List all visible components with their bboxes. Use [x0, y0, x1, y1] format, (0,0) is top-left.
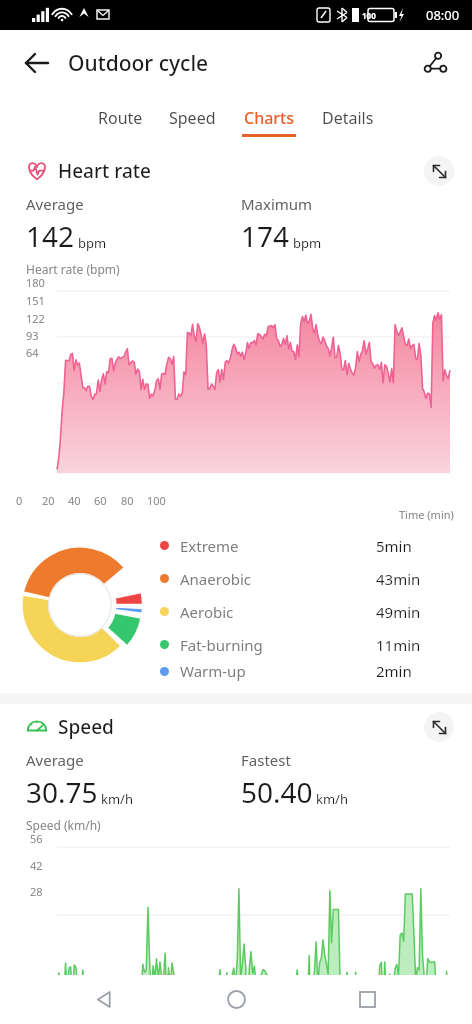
- staticText: 5min: [376, 536, 450, 556]
- staticText: Speed: [58, 714, 114, 740]
- staticText: 20: [42, 493, 55, 508]
- staticText: 40: [68, 493, 81, 508]
- button[interactable]: Fat-burning: [160, 628, 450, 661]
- staticText: Time (min): [399, 507, 454, 522]
- staticText: 08:00: [426, 6, 460, 24]
- staticText: km/h: [101, 790, 133, 808]
- staticText: Anaerobic: [180, 569, 376, 589]
- staticText: 42: [30, 858, 43, 873]
- staticText: bpm: [293, 234, 322, 252]
- staticText: Route: [98, 107, 143, 129]
- staticText: 151: [26, 293, 45, 308]
- staticText: 30.75: [26, 773, 98, 811]
- staticText: 28: [30, 884, 43, 899]
- staticText: 174: [241, 217, 290, 255]
- button[interactable]: Back: [79, 975, 131, 1024]
- staticText: 142: [26, 217, 75, 255]
- staticText: 180: [26, 275, 45, 290]
- button[interactable]: Expand Speed chart: [424, 712, 454, 742]
- staticText: 49min: [376, 602, 450, 622]
- button[interactable]: Aerobic: [160, 595, 450, 628]
- staticText: 80: [121, 493, 134, 508]
- button[interactable]: Details: [314, 103, 382, 141]
- staticText: Warm-up: [180, 661, 376, 681]
- button[interactable]: Warm-up: [160, 661, 450, 681]
- staticText: Outdoor cycle: [68, 49, 209, 78]
- staticText: 100: [362, 10, 376, 21]
- button[interactable]: Anaerobic: [160, 562, 450, 595]
- staticText: Aerobic: [180, 602, 376, 622]
- staticText: Speed: [169, 107, 216, 129]
- staticText: Charts: [244, 107, 295, 129]
- button[interactable]: Extreme: [160, 529, 450, 562]
- staticText: bpm: [78, 234, 107, 252]
- staticText: 11min: [376, 635, 450, 655]
- button[interactable]: Route: [90, 103, 151, 141]
- staticText: 2min: [376, 661, 450, 681]
- staticText: Heart rate: [58, 158, 151, 184]
- staticText: Extreme: [180, 536, 376, 556]
- staticText: 43min: [376, 569, 450, 589]
- staticText: Average: [26, 194, 84, 214]
- staticText: 64: [26, 345, 39, 360]
- button[interactable]: Charts: [234, 103, 304, 141]
- staticText: Heart rate (bpm): [26, 261, 120, 277]
- staticText: 60: [94, 493, 107, 508]
- staticText: 93: [26, 328, 39, 343]
- staticText: 100: [147, 493, 166, 508]
- button[interactable]: Home: [210, 975, 262, 1024]
- staticText: km/h: [316, 790, 348, 808]
- staticText: Maximum: [241, 194, 313, 214]
- staticText: 50.40: [241, 773, 313, 811]
- button[interactable]: Speed: [161, 103, 224, 141]
- staticText: Speed (km/h): [26, 817, 101, 833]
- staticText: 122: [26, 311, 45, 326]
- button[interactable]: Back: [14, 40, 60, 86]
- button[interactable]: Recents: [341, 975, 393, 1024]
- staticText: Fastest: [241, 750, 291, 770]
- button[interactable]: Share: [412, 40, 458, 86]
- staticText: 0: [16, 493, 23, 508]
- staticText: 56: [30, 831, 43, 846]
- button[interactable]: Expand Heart rate chart: [424, 156, 454, 186]
- staticText: Average: [26, 750, 84, 770]
- staticText: Fat-burning: [180, 635, 376, 655]
- staticText: Details: [322, 107, 374, 129]
